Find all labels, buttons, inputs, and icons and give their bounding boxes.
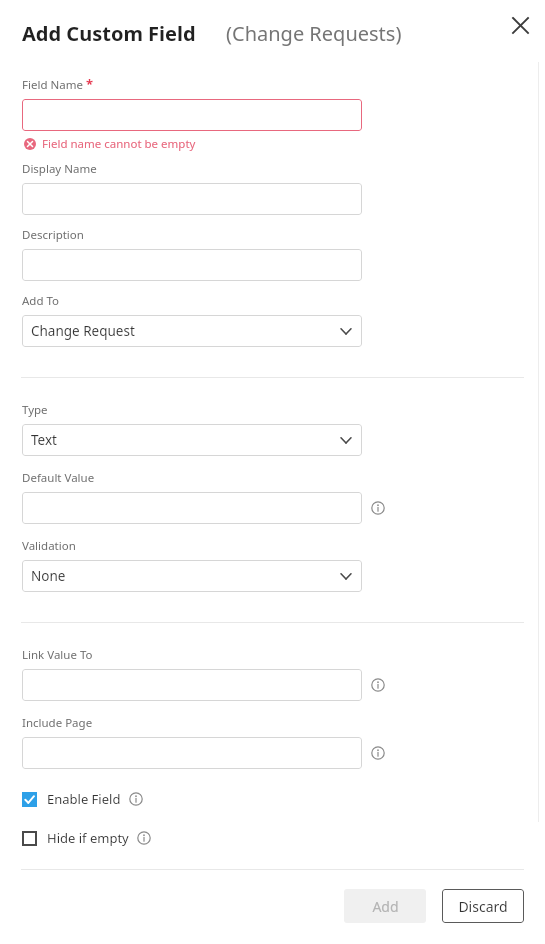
staticText: Hide if empty: [47, 829, 129, 847]
button[interactable]: [22, 99, 362, 131]
staticText: None: [31, 567, 66, 585]
staticText: Add: [372, 897, 399, 916]
staticText: Enable Field: [47, 790, 121, 808]
staticText: *: [86, 75, 94, 93]
staticText: Description: [22, 227, 84, 243]
button[interactable]: Discard: [442, 889, 524, 923]
button[interactable]: Add: [344, 889, 426, 923]
staticText: Field name cannot be empty: [42, 136, 196, 152]
button[interactable]: None: [22, 560, 362, 592]
staticText: Type: [22, 402, 48, 418]
button[interactable]: Hide if empty: [22, 828, 154, 848]
button[interactable]: [22, 492, 362, 524]
button[interactable]: About Enable Field: [126, 789, 146, 809]
staticText: Change Request: [31, 322, 135, 340]
staticText: Validation: [22, 538, 76, 554]
button[interactable]: [22, 249, 362, 281]
button[interactable]: More information: [368, 675, 388, 695]
staticText: Include Page: [22, 715, 93, 731]
staticText: Link Value To: [22, 647, 93, 663]
button[interactable]: More information: [368, 498, 388, 518]
button[interactable]: About Hide if empty: [134, 828, 154, 848]
button[interactable]: [22, 737, 362, 769]
button[interactable]: Enable Field: [22, 789, 146, 809]
staticText: Add To: [22, 293, 60, 309]
staticText: Field Name: [22, 77, 83, 93]
button[interactable]: [22, 183, 362, 215]
staticText: (Change Requests): [226, 20, 402, 47]
button[interactable]: Change Request: [22, 315, 362, 347]
staticText: Default Value: [22, 470, 95, 486]
staticText: Text: [31, 431, 57, 449]
staticText: Display Name: [22, 161, 97, 177]
button[interactable]: Close: [503, 8, 537, 42]
staticText: Discard: [458, 897, 508, 916]
button[interactable]: [22, 669, 362, 701]
button[interactable]: Text: [22, 424, 362, 456]
button[interactable]: More information: [368, 743, 388, 763]
staticText: Add Custom Field: [22, 20, 196, 47]
